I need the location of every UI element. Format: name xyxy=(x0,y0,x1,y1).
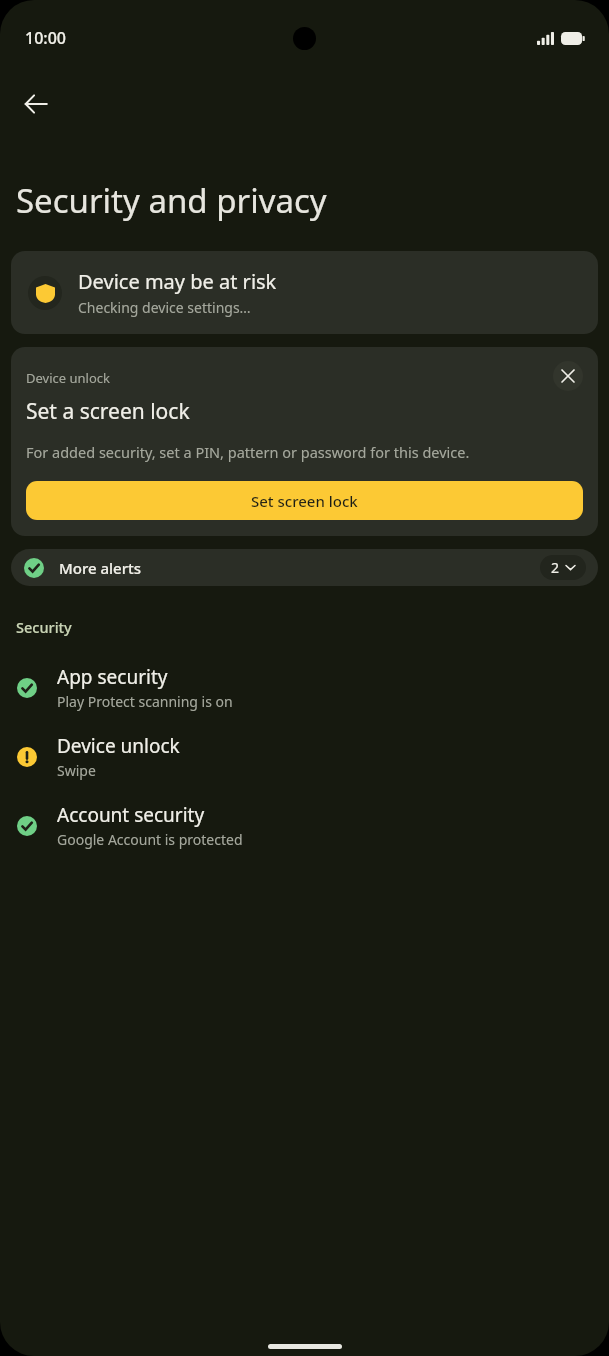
staticText: Checking device settings… xyxy=(78,298,251,317)
button[interactable]: Device unlock xyxy=(0,722,609,791)
staticText: Set a screen lock xyxy=(26,397,190,426)
staticText: Swipe xyxy=(57,761,96,780)
button[interactable]: Device may be at risk xyxy=(11,251,598,334)
staticText: 2 xyxy=(551,558,560,577)
staticText: Device unlock xyxy=(26,369,553,387)
staticText: Device may be at risk xyxy=(78,268,277,295)
staticText: Google Account is protected xyxy=(57,830,243,849)
button[interactable]: More alerts xyxy=(11,549,598,586)
staticText: Security xyxy=(16,617,72,637)
staticText: For added security, set a PIN, pattern o… xyxy=(26,442,470,462)
staticText: Play Protect scanning is on xyxy=(57,692,233,711)
staticText: App security xyxy=(57,664,168,690)
staticText: Set screen lock xyxy=(251,491,358,511)
staticText: More alerts xyxy=(59,558,540,578)
button[interactable]: Set screen lock xyxy=(26,481,583,520)
staticText: Security and privacy xyxy=(16,178,327,223)
button[interactable]: Back xyxy=(8,76,64,132)
staticText: Device unlock xyxy=(57,733,180,759)
button[interactable]: App security xyxy=(0,653,609,722)
staticText: Account security xyxy=(57,802,205,828)
button[interactable]: Account security xyxy=(0,791,609,860)
button[interactable]: Dismiss xyxy=(553,361,583,391)
staticText: 10:00 xyxy=(25,27,66,49)
